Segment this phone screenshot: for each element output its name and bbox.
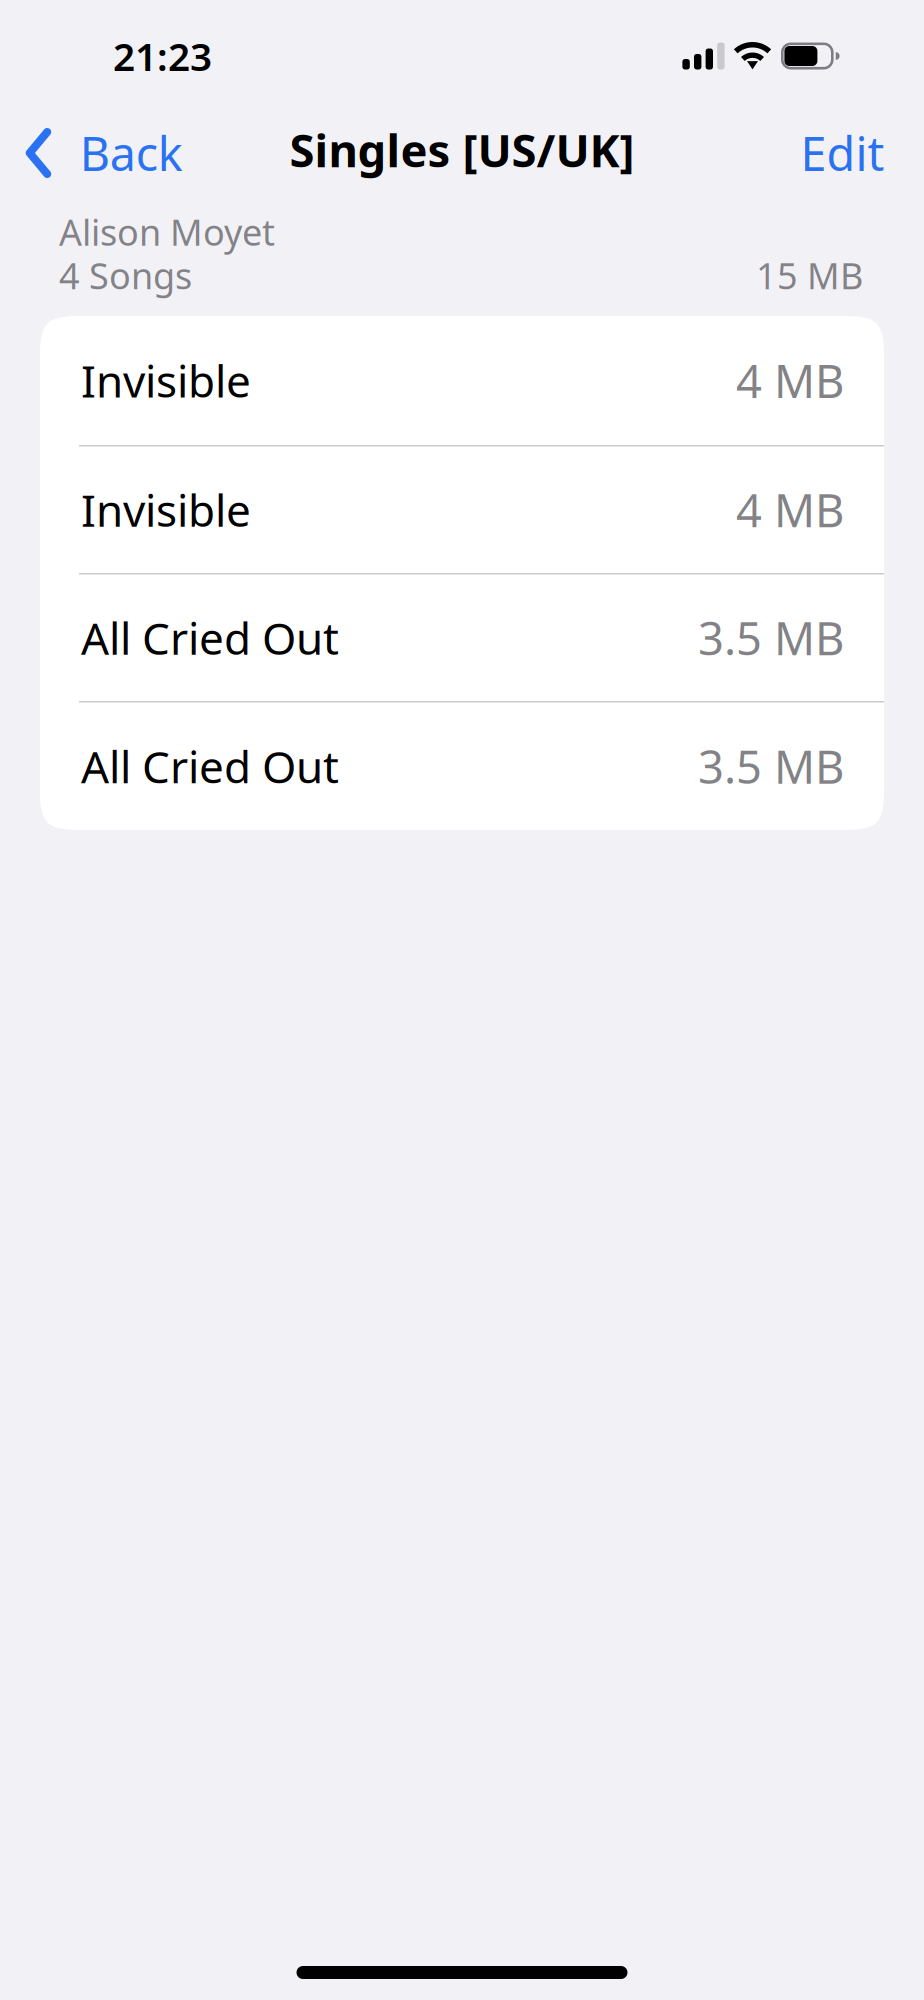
staticText: Singles [US/UK] (289, 120, 634, 180)
button[interactable]: Back (0, 119, 199, 187)
staticText: 4 MB (736, 350, 844, 411)
staticText: Alison Moyet (59, 208, 275, 256)
staticText: 4 Songs (59, 251, 192, 299)
button[interactable]: All Cried Out (40, 702, 884, 830)
staticText: 15 MB (756, 251, 863, 299)
button[interactable]: Invisible (40, 446, 884, 573)
staticText: 21:23 (113, 30, 212, 82)
button[interactable]: Invisible (40, 316, 884, 445)
staticText: 4 MB (736, 480, 844, 540)
button[interactable]: Edit (780, 119, 903, 187)
staticText: All Cried Out (81, 737, 339, 795)
staticText: 3.5 MB (698, 736, 844, 796)
staticText: Back (80, 122, 183, 184)
staticText: Invisible (81, 351, 251, 410)
staticText: All Cried Out (81, 608, 339, 667)
staticText: Invisible (81, 480, 251, 539)
button[interactable]: All Cried Out (40, 574, 884, 701)
staticText: 3.5 MB (698, 608, 844, 668)
staticText: Edit (800, 122, 884, 184)
